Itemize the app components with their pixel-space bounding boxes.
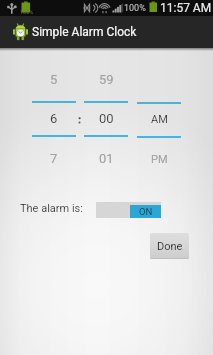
staticText: 11:57 AM <box>160 1 212 15</box>
staticText: 5 <box>50 72 58 87</box>
staticText: PM <box>151 153 168 166</box>
staticText: 01 <box>99 151 114 166</box>
staticText: Done <box>157 240 183 253</box>
staticText: AM <box>151 113 168 126</box>
staticText: Simple Alarm Clock <box>32 25 137 39</box>
staticText: 7 <box>50 151 58 166</box>
staticText: 100% <box>20 9 34 15</box>
button[interactable]: 59 <box>84 66 128 92</box>
button[interactable]: PM <box>137 146 181 172</box>
button[interactable]: Done <box>150 233 189 259</box>
staticText: 00 <box>99 111 114 126</box>
staticText: The alarm is: <box>20 202 83 215</box>
staticText: ON <box>139 206 153 217</box>
button[interactable]: 7 <box>32 145 76 171</box>
staticText: 59 <box>99 72 114 87</box>
button[interactable]: 6 <box>32 105 76 131</box>
button[interactable]: ON <box>96 202 161 218</box>
button[interactable]: 00 <box>84 105 128 131</box>
staticText: 100% <box>124 3 146 14</box>
button[interactable]: 5 <box>32 66 76 92</box>
button[interactable]: 01 <box>84 145 128 171</box>
staticText: 6 <box>50 111 58 126</box>
button[interactable]: AM <box>137 106 181 132</box>
